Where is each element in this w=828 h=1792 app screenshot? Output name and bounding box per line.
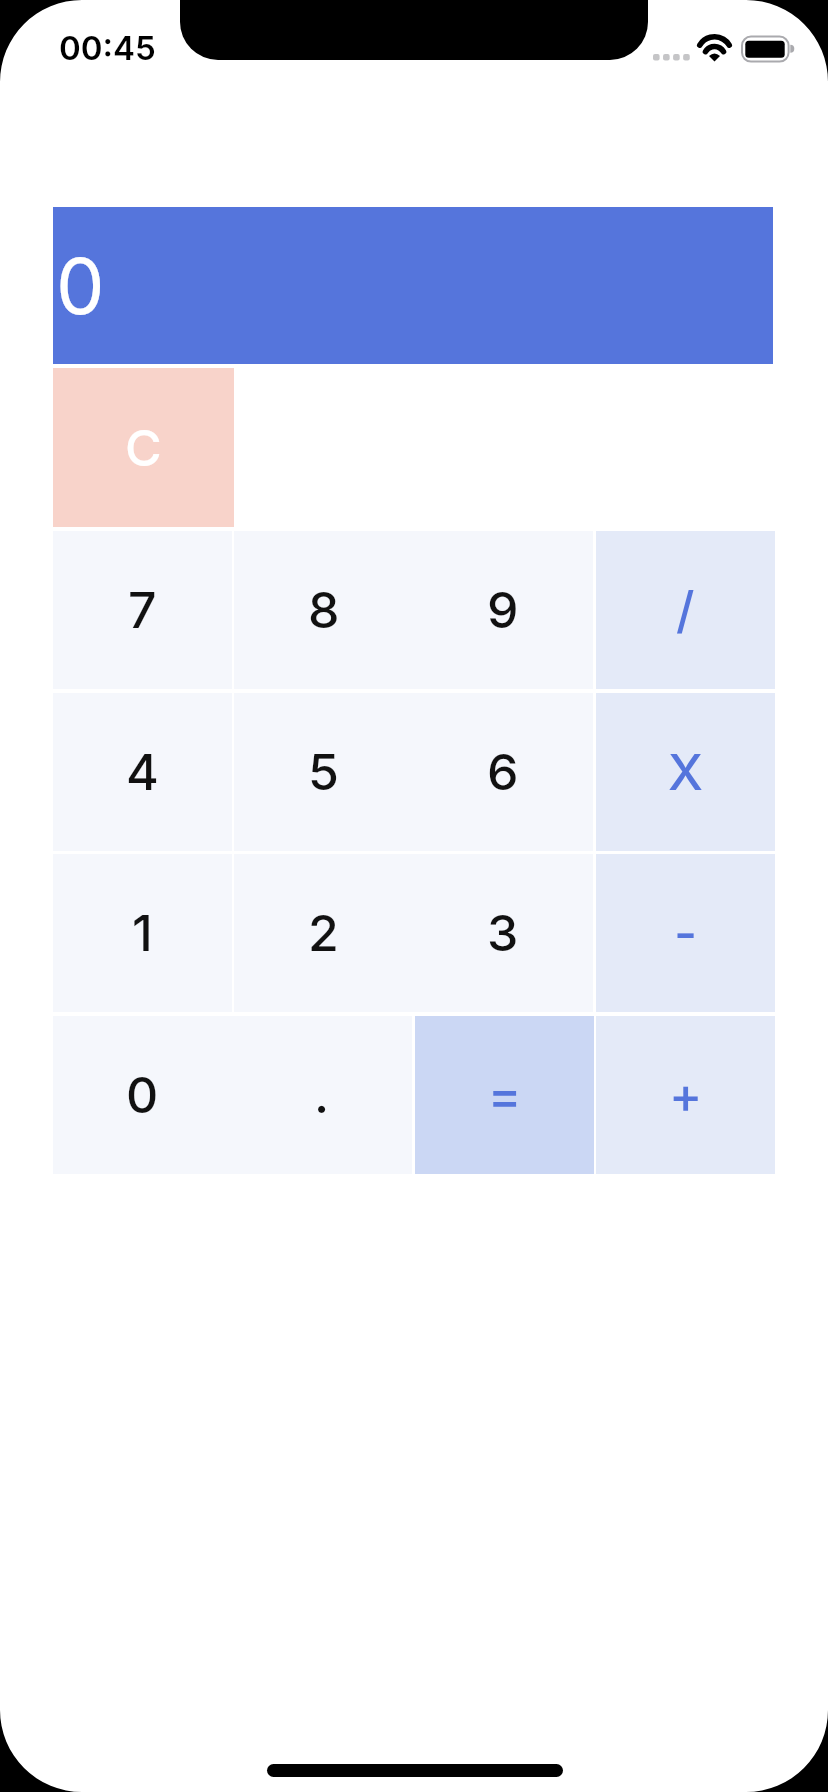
button[interactable]: + <box>596 1016 775 1174</box>
staticText: C <box>125 418 162 478</box>
staticText: 1 <box>132 903 153 963</box>
button[interactable]: 7 <box>53 531 232 689</box>
button[interactable]: X <box>596 693 775 851</box>
staticText: X <box>668 742 704 802</box>
staticText: / <box>676 580 695 640</box>
button[interactable]: . <box>232 1016 412 1174</box>
staticText: 2 <box>308 903 339 963</box>
button[interactable]: C <box>53 368 234 527</box>
staticText: 4 <box>126 742 159 802</box>
button[interactable]: 6 <box>413 693 593 851</box>
button[interactable]: 0 <box>53 1016 232 1174</box>
staticText: 5 <box>308 742 339 802</box>
staticText: = <box>488 1065 522 1125</box>
button[interactable]: 5 <box>234 693 413 851</box>
button[interactable]: 4 <box>53 693 232 851</box>
button[interactable]: / <box>596 531 775 689</box>
staticText: - <box>674 903 698 963</box>
button[interactable]: 3 <box>413 854 593 1012</box>
button[interactable]: 9 <box>413 531 593 689</box>
staticText: 0 <box>56 239 105 332</box>
staticText: 9 <box>487 580 519 640</box>
button[interactable]: 2 <box>234 854 413 1012</box>
staticText: + <box>669 1065 703 1125</box>
staticText: 00:45 <box>59 28 156 66</box>
button[interactable]: 8 <box>234 531 413 689</box>
staticText: 8 <box>308 580 340 640</box>
button[interactable]: 1 <box>53 854 232 1012</box>
staticText: 3 <box>487 903 519 963</box>
staticText: . <box>314 1065 330 1125</box>
staticText: 6 <box>487 742 519 802</box>
button[interactable]: = <box>415 1016 594 1174</box>
staticText: 7 <box>128 580 157 640</box>
staticText: 0 <box>126 1065 159 1125</box>
button[interactable]: - <box>596 854 775 1012</box>
